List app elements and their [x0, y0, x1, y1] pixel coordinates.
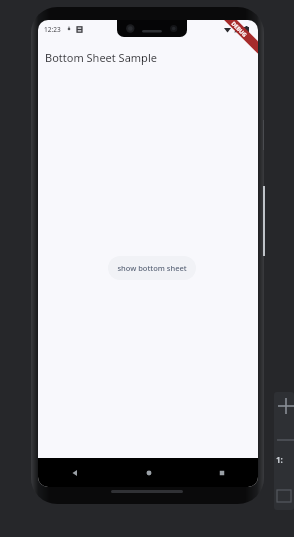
staticText: DEBUG — [230, 20, 249, 38]
staticText: Bottom Sheet Sample — [45, 50, 157, 65]
button[interactable]: Recent apps — [185, 458, 258, 487]
staticText: show bottom sheet — [117, 263, 187, 273]
staticText: 12:23 — [44, 25, 61, 34]
staticText: 1: — [276, 454, 283, 465]
button[interactable]: Back — [38, 458, 112, 487]
button[interactable]: Home — [112, 458, 185, 487]
button[interactable]: show bottom sheet — [108, 256, 196, 280]
